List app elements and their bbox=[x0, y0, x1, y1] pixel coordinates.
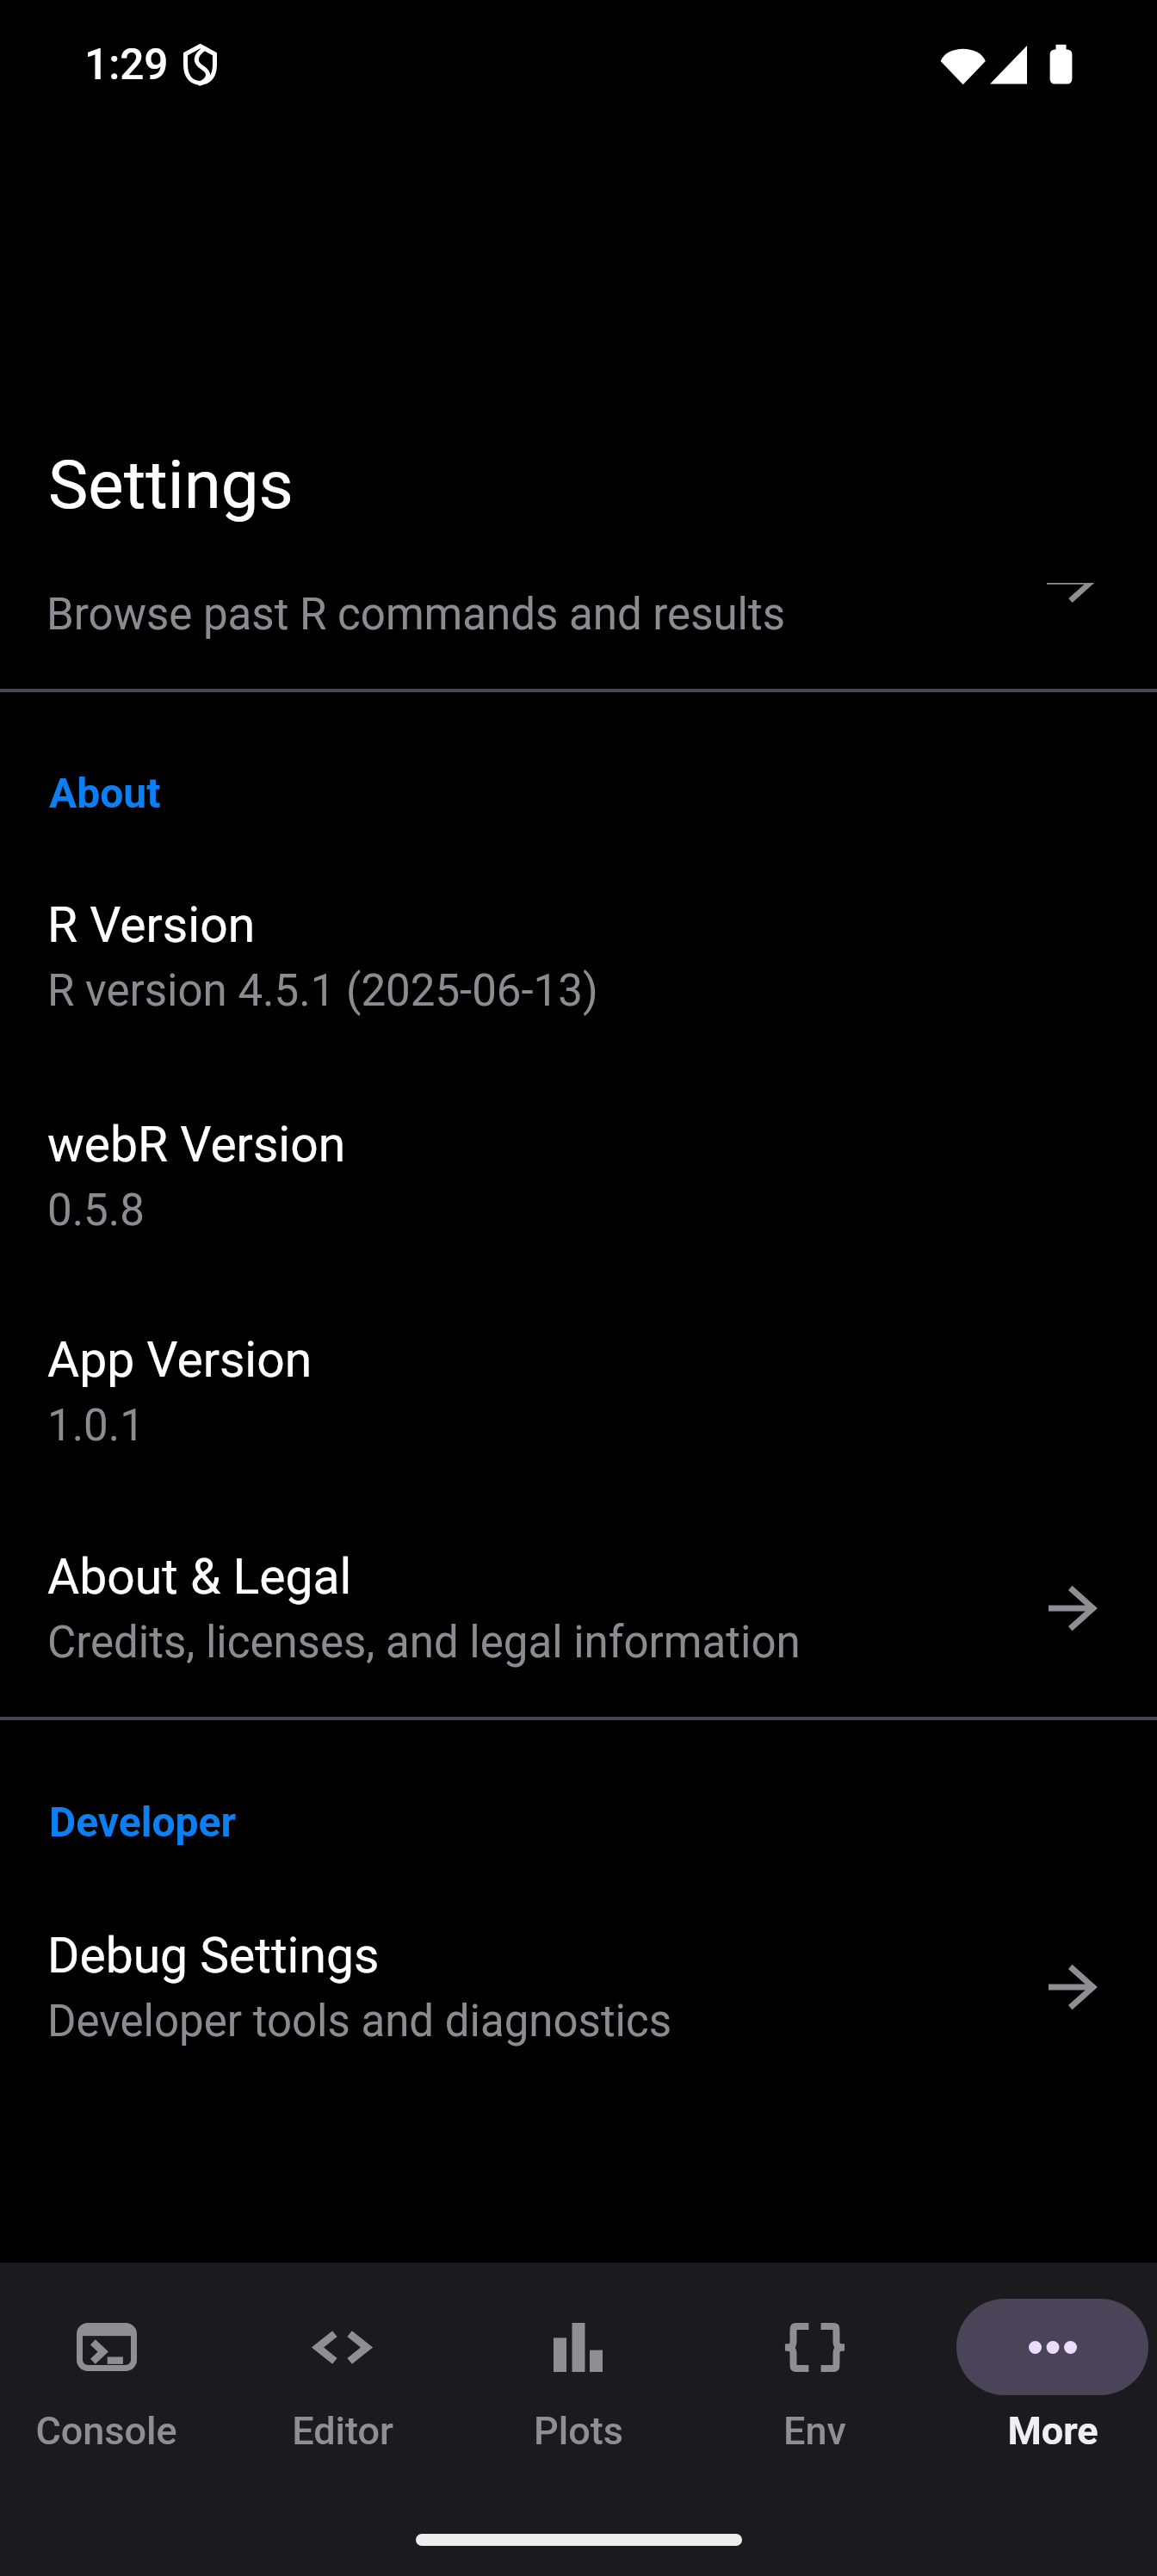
staticText: 1.0.1 bbox=[47, 1400, 145, 1452]
staticText: About bbox=[49, 769, 161, 817]
staticText: Debug Settings bbox=[47, 1927, 380, 1985]
button[interactable]: Plots bbox=[460, 2299, 696, 2454]
staticText: More bbox=[1007, 2408, 1098, 2454]
staticText: Browse past R commands and results bbox=[46, 589, 785, 641]
staticText: Developer tools and diagnostics bbox=[47, 1996, 671, 2047]
staticText: Editor bbox=[292, 2408, 393, 2454]
staticText: Console bbox=[35, 2408, 177, 2454]
staticText: Plots bbox=[534, 2408, 623, 2454]
staticText: About & Legal bbox=[47, 1548, 352, 1606]
staticText: Settings bbox=[48, 446, 294, 524]
staticText: webR Version bbox=[47, 1116, 346, 1173]
button[interactable]: webR Version bbox=[0, 1116, 1157, 1236]
staticText: App Version bbox=[47, 1331, 312, 1389]
staticText: Env bbox=[783, 2408, 846, 2454]
button[interactable]: Debug Settings bbox=[0, 1927, 1157, 2047]
button[interactable]: About & Legal bbox=[0, 1548, 1157, 1669]
staticText: 0.5.8 bbox=[47, 1185, 145, 1236]
button[interactable]: More bbox=[934, 2299, 1157, 2454]
staticText: Credits, licenses, and legal information bbox=[47, 1617, 801, 1669]
staticText: R version 4.5.1 (2025-06-13) bbox=[47, 965, 598, 1017]
button[interactable]: Env bbox=[696, 2299, 933, 2454]
other: Open bbox=[1047, 583, 1095, 605]
button[interactable]: R Version bbox=[0, 896, 1157, 1017]
button[interactable]: App Version bbox=[0, 1331, 1157, 1452]
other: Open Debug Settings bbox=[1049, 1963, 1097, 2011]
button[interactable]: Console bbox=[0, 2299, 225, 2454]
staticText: Developer bbox=[49, 1798, 237, 1846]
staticText: R Version bbox=[47, 896, 256, 954]
button[interactable]: Editor bbox=[224, 2299, 461, 2454]
other: Open About & Legal bbox=[1049, 1584, 1097, 1632]
staticText: 1:29 bbox=[84, 40, 169, 90]
